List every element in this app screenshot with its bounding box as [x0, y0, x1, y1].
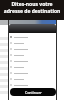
button[interactable]	[10, 40, 56, 46]
button[interactable]	[10, 76, 56, 82]
button[interactable]	[10, 34, 56, 40]
button[interactable]	[10, 64, 56, 70]
staticText: Continuer	[25, 90, 42, 95]
staticText: Dites-nous votre adresse de destination	[2, 1, 62, 14]
button[interactable]	[10, 52, 56, 58]
button[interactable]	[10, 70, 56, 76]
button[interactable]	[10, 46, 56, 52]
button[interactable]: Continuer	[10, 88, 56, 96]
button[interactable]	[10, 58, 56, 64]
button[interactable]	[10, 82, 56, 88]
